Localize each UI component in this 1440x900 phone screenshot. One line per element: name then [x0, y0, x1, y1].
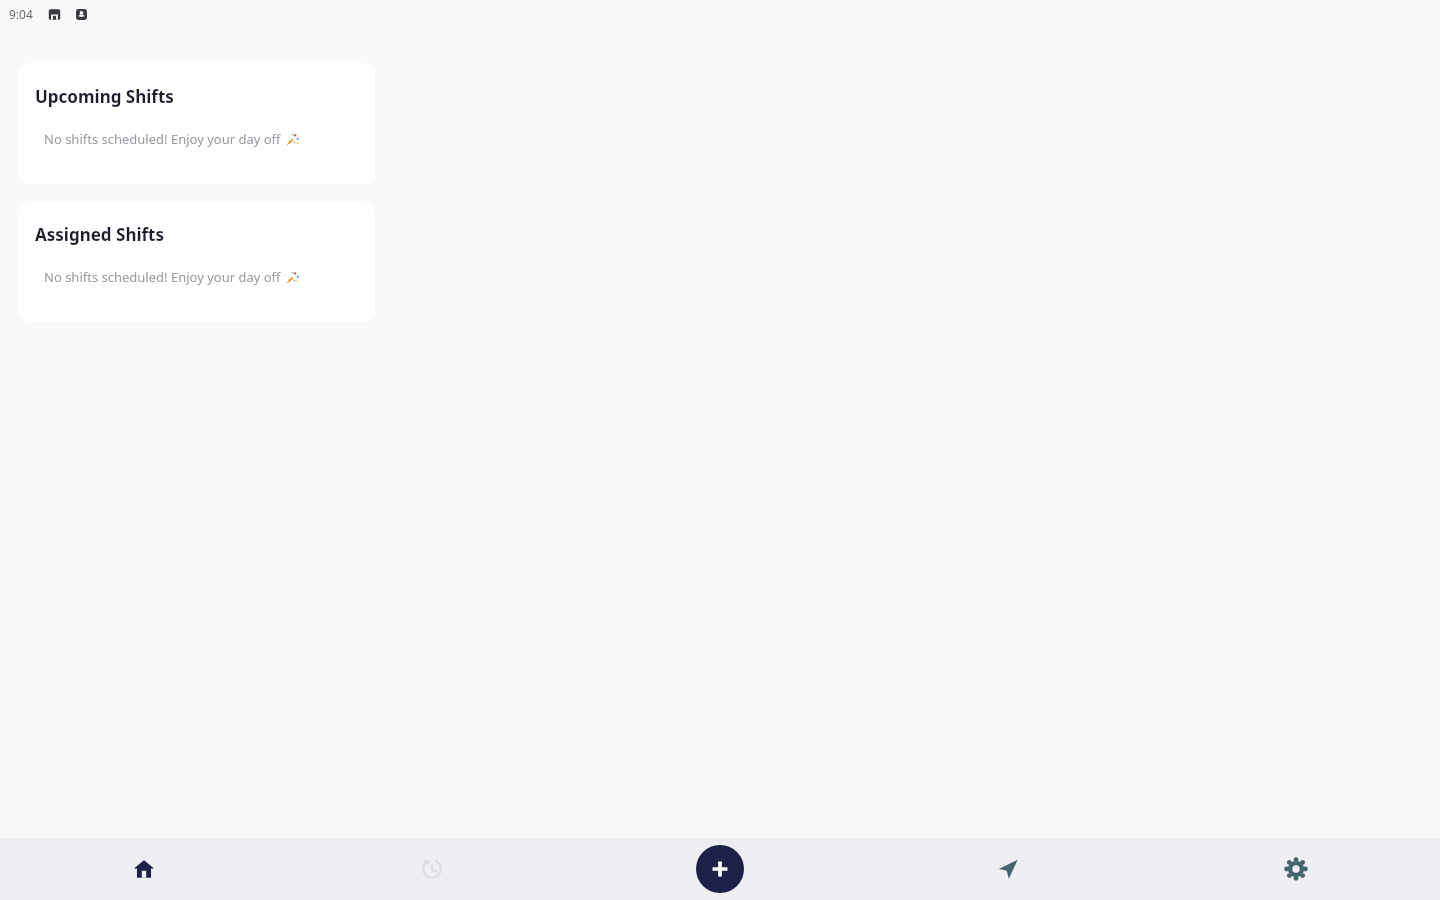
button[interactable]: Assigned Shifts [19, 201, 375, 322]
staticText: Upcoming Shifts [35, 85, 174, 108]
staticText: Assigned Shifts [35, 223, 165, 246]
staticText: No shifts scheduled! Enjoy your day off [44, 268, 281, 286]
button[interactable]: Send [864, 838, 1152, 900]
button[interactable]: Upcoming Shifts [19, 63, 375, 184]
staticText: No shifts scheduled! Enjoy your day off [44, 130, 281, 148]
button[interactable]: Add shift [576, 838, 864, 900]
button[interactable]: Settings [1152, 838, 1440, 900]
button[interactable]: Home [0, 838, 288, 900]
staticText: 9:04 [9, 6, 33, 22]
button[interactable]: Add [696, 845, 744, 893]
